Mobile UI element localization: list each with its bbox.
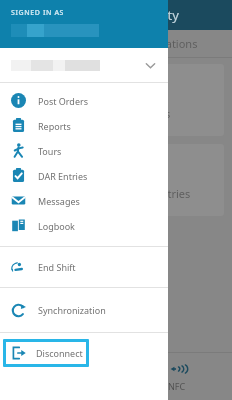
staticText: Synchronization — [38, 304, 106, 316]
button[interactable]: Messages — [0, 188, 168, 213]
staticText: Messages — [38, 195, 80, 207]
button[interactable]: Reports — [120, 64, 224, 136]
staticText: End Shift — [38, 261, 76, 273]
staticText: DAR Entries — [38, 170, 88, 182]
button[interactable]: DAR Entries — [0, 163, 168, 188]
staticText: NFC — [168, 380, 186, 392]
button[interactable]: Logbook — [0, 213, 168, 238]
button[interactable]: Expand account list — [0, 48, 168, 82]
button[interactable]: Tours — [0, 138, 168, 163]
staticText: Security — [130, 6, 179, 24]
staticText: Notifications — [132, 36, 198, 51]
button[interactable]: Post Orders — [0, 88, 168, 113]
staticText: Reports — [38, 120, 71, 132]
staticText: Tours — [38, 145, 62, 157]
staticText: DAR Entries — [130, 186, 191, 201]
staticText: SIGNED IN AS — [11, 8, 65, 18]
button[interactable]: DAR Entries — [120, 144, 224, 216]
staticText: Reports — [130, 106, 171, 121]
button[interactable]: Disconnect — [6, 342, 86, 364]
staticText: Post Orders — [38, 95, 88, 107]
staticText: Logbook — [38, 220, 75, 232]
button[interactable]: End Shift — [0, 247, 168, 287]
staticText: Disconnect — [36, 347, 83, 359]
button[interactable]: Reports — [0, 113, 168, 138]
button[interactable]: Synchronization — [0, 288, 168, 332]
other: Expand account list — [143, 58, 157, 72]
